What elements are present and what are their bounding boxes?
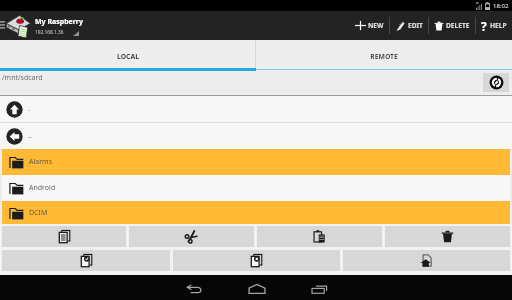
button[interactable]: Copy	[2, 226, 126, 247]
staticText: NEW	[368, 21, 384, 30]
button[interactable]: DCIM	[2, 201, 510, 224]
button[interactable]: Alarms	[2, 149, 510, 175]
staticText: ..	[28, 131, 32, 141]
button[interactable]: Deselect	[173, 250, 340, 271]
staticText: HELP	[490, 21, 507, 30]
button[interactable]: ..	[0, 123, 512, 149]
button[interactable]: Delete	[385, 226, 510, 247]
staticText: REMOTE	[370, 52, 398, 61]
staticText: .	[28, 104, 30, 114]
button[interactable]: Refresh	[483, 73, 509, 92]
button[interactable]: Home folder	[343, 250, 510, 271]
button[interactable]: DELETE	[429, 11, 475, 40]
staticText: 18:02	[493, 2, 509, 10]
button[interactable]: REMOTE	[256, 40, 512, 68]
button[interactable]: Home	[225, 278, 288, 300]
staticText: Android	[29, 183, 56, 193]
button[interactable]: .	[0, 96, 512, 122]
button[interactable]: EDIT	[390, 11, 428, 40]
button[interactable]: ?	[476, 11, 512, 40]
staticText: DCIM	[29, 208, 48, 218]
staticText: ?	[481, 18, 487, 34]
button[interactable]: Recents	[288, 278, 351, 300]
button[interactable]: Android	[2, 175, 510, 201]
staticText: My Raspberry	[35, 17, 83, 27]
staticText: LOCAL	[117, 52, 139, 61]
button[interactable]: Back	[162, 278, 225, 300]
staticText: /mnt/sdcard	[2, 73, 43, 83]
staticText: 192.168.1.36	[35, 29, 64, 36]
staticText: Alarms	[29, 157, 52, 167]
staticText: DELETE	[446, 21, 470, 30]
staticText: EDIT	[408, 21, 423, 30]
button[interactable]: NEW	[350, 11, 389, 40]
button[interactable]: Paste	[257, 226, 382, 247]
button[interactable]: LOCAL	[0, 40, 255, 68]
button[interactable]: Cut	[129, 226, 254, 247]
button[interactable]: Select all	[2, 250, 170, 271]
button[interactable]: My Raspberry	[5, 14, 83, 38]
